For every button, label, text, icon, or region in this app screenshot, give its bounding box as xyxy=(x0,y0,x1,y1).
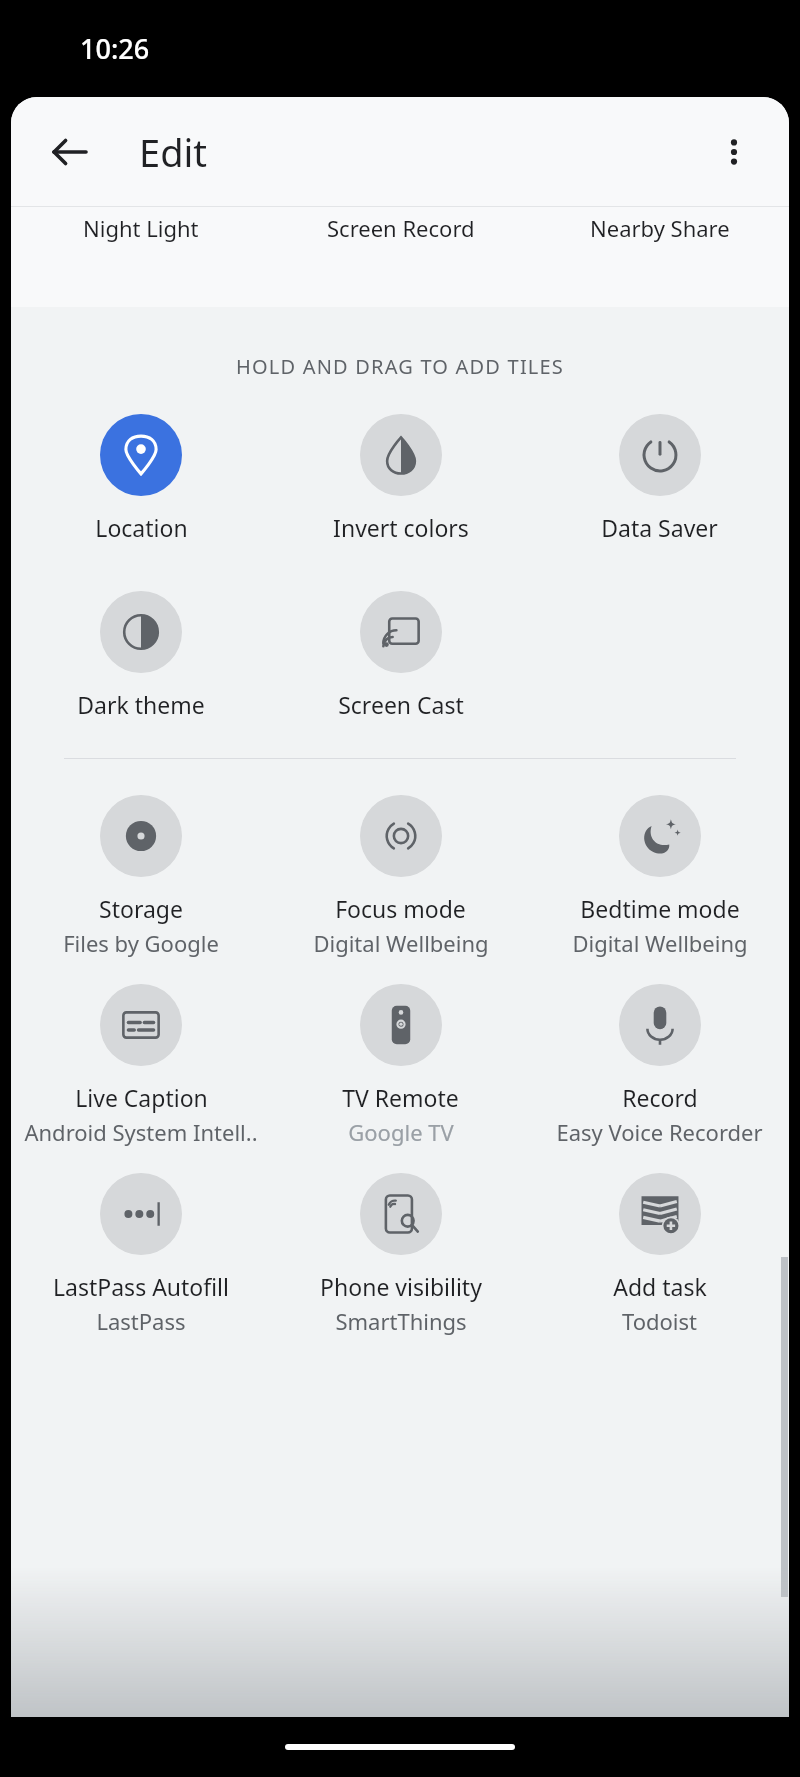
button[interactable]: Live Caption xyxy=(11,980,271,1151)
button[interactable]: Phone visibility xyxy=(271,1169,530,1340)
button[interactable]: Add task xyxy=(530,1169,789,1340)
staticText: Record xyxy=(622,1082,698,1113)
button[interactable]: Data Saver xyxy=(530,410,789,547)
staticText: Screen Record xyxy=(327,213,475,243)
staticText: Digital Wellbeing xyxy=(313,928,489,958)
staticText: Todoist xyxy=(622,1306,697,1336)
button[interactable]: More options xyxy=(699,117,769,187)
button[interactable]: Location xyxy=(11,410,271,547)
button[interactable]: Storage xyxy=(11,791,271,962)
button[interactable]: Focus mode xyxy=(271,791,530,962)
staticText: Bedtime mode xyxy=(580,893,740,924)
button[interactable]: Bedtime mode xyxy=(530,791,789,962)
button[interactable]: LastPass Autofill xyxy=(11,1169,271,1340)
staticText: Android System Intell.. xyxy=(24,1117,258,1147)
staticText: Digital Wellbeing xyxy=(572,928,748,958)
staticText: LastPass xyxy=(96,1306,186,1336)
button[interactable]: Invert colors xyxy=(271,410,530,547)
staticText: Live Caption xyxy=(75,1082,208,1113)
staticText: Phone visibility xyxy=(320,1271,482,1302)
staticText: Add task xyxy=(613,1271,707,1302)
staticText: Storage xyxy=(99,893,183,924)
staticText: Data Saver xyxy=(601,512,718,543)
staticText: Nearby Share xyxy=(590,213,730,243)
staticText: TV Remote xyxy=(342,1082,459,1113)
staticText: 10:26 xyxy=(80,30,150,67)
button[interactable]: TV Remote xyxy=(271,980,530,1151)
staticText: HOLD AND DRAG TO ADD TILES xyxy=(11,353,789,380)
staticText: Focus mode xyxy=(335,893,466,924)
staticText: Invert colors xyxy=(333,512,469,543)
staticText: Google TV xyxy=(348,1117,454,1147)
button[interactable]: Record xyxy=(530,980,789,1151)
staticText: Location xyxy=(95,512,188,543)
staticText: Night Light xyxy=(83,213,199,243)
staticText: Dark theme xyxy=(77,689,205,720)
button[interactable]: Screen Cast xyxy=(271,587,530,724)
staticText: SmartThings xyxy=(335,1306,467,1336)
staticText: LastPass Autofill xyxy=(53,1271,229,1302)
button[interactable]: Dark theme xyxy=(11,587,271,724)
staticText: Edit xyxy=(139,126,208,178)
button[interactable]: Back xyxy=(33,116,105,188)
staticText: Files by Google xyxy=(63,928,219,958)
staticText: Screen Cast xyxy=(338,689,464,720)
staticText: Easy Voice Recorder xyxy=(556,1117,763,1147)
